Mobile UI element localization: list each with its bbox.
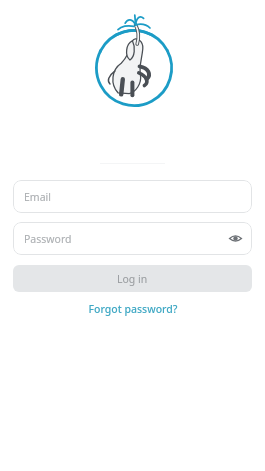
button[interactable]: Email (13, 180, 252, 213)
button[interactable]: Password (13, 222, 252, 255)
staticText: Email (24, 190, 51, 204)
button[interactable]: Show password (224, 227, 247, 250)
staticText: Password (24, 232, 72, 246)
staticText: Log in (117, 272, 148, 286)
staticText: Forgot password? (88, 302, 178, 316)
button[interactable]: Log in (13, 265, 252, 292)
button[interactable]: Forgot password? (80, 300, 185, 318)
